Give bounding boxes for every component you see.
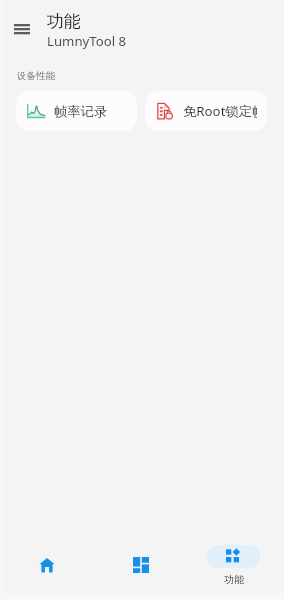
button[interactable]: 帧率记录 [16, 91, 137, 131]
button[interactable]: Menu [2, 9, 42, 49]
staticText: 功能 [47, 11, 81, 32]
staticText: LumnyTool 8 [47, 32, 127, 50]
button[interactable]: Tools [94, 530, 187, 600]
staticText: 功能 [224, 573, 244, 586]
button[interactable]: Features [187, 530, 280, 600]
staticText: 免Root锁定帧率 [183, 102, 257, 120]
button[interactable]: 免Root锁定帧率 [145, 91, 267, 131]
staticText: 设备性能 [17, 70, 55, 82]
button[interactable]: Home [0, 530, 94, 600]
staticText: 帧率记录 [54, 103, 108, 120]
